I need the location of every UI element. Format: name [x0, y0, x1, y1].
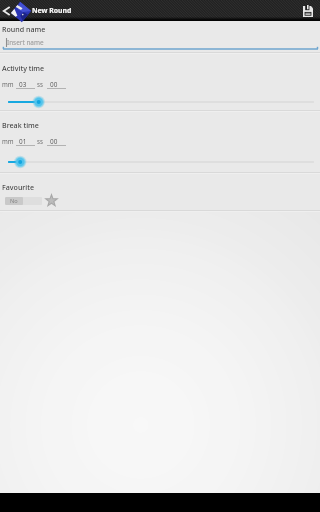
button[interactable]: No: [5, 197, 42, 205]
staticText: Insert name: [7, 38, 44, 47]
button[interactable]: 01: [16, 135, 35, 147]
staticText: 03: [19, 80, 27, 89]
button[interactable]: Duration slider: [0, 154, 320, 170]
staticText: Activity time: [2, 63, 45, 73]
staticText: Round name: [2, 24, 46, 34]
staticText: 01: [19, 137, 27, 146]
staticText: No: [10, 197, 18, 205]
button[interactable]: Save: [294, 0, 320, 21]
button[interactable]: 03: [16, 78, 35, 90]
staticText: mm: [2, 80, 14, 88]
button[interactable]: Duration slider: [0, 94, 320, 110]
staticText: 00: [50, 80, 58, 89]
staticText: Break time: [2, 120, 39, 130]
staticText: ss: [37, 137, 43, 145]
button[interactable]: 00: [47, 78, 66, 90]
staticText: Favourite: [2, 182, 35, 192]
button[interactable]: 00: [47, 135, 66, 147]
staticText: New Round: [32, 6, 72, 15]
staticText: ss: [37, 80, 43, 88]
staticText: mm: [2, 137, 14, 145]
button[interactable]: Navigate up: [0, 0, 31, 21]
button[interactable]: Mark favourite: [45, 194, 58, 207]
staticText: 00: [50, 137, 58, 146]
